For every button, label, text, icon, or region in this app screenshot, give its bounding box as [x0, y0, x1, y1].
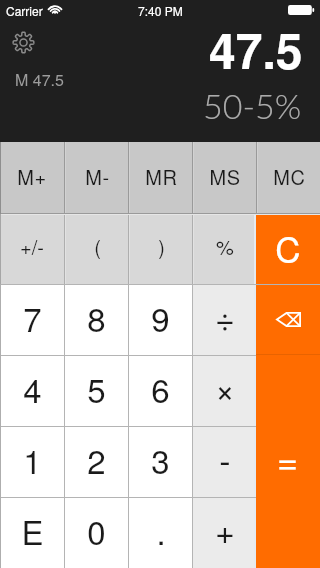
button[interactable]: ÷ — [193, 285, 256, 355]
staticText: % — [216, 232, 234, 261]
button[interactable]: MS — [194, 142, 256, 213]
button[interactable]: 5 — [65, 356, 128, 426]
button[interactable]: 0 — [65, 498, 128, 568]
button[interactable]: Settings — [9, 28, 38, 57]
button[interactable]: % — [194, 215, 256, 284]
staticText: MR — [145, 162, 178, 191]
staticText: . — [156, 507, 166, 554]
staticText: 1 — [23, 436, 42, 483]
staticText: 0 — [87, 507, 106, 554]
staticText: 5 — [87, 365, 106, 412]
button[interactable]: - — [193, 427, 256, 497]
button[interactable]: 3 — [129, 427, 192, 497]
staticText: MS — [209, 162, 241, 191]
staticText: M- — [85, 162, 110, 191]
button[interactable]: +/- — [0, 215, 64, 284]
staticText: ) — [158, 232, 165, 261]
button[interactable]: Backspace — [256, 285, 320, 355]
staticText: 50-5% — [203, 85, 302, 126]
staticText: M+ — [17, 162, 47, 191]
button[interactable]: M- — [66, 142, 128, 213]
button[interactable]: 4 — [0, 356, 64, 426]
button[interactable]: + — [193, 498, 256, 568]
staticText: 7:40 PM — [138, 2, 183, 19]
button[interactable]: × — [193, 356, 256, 426]
staticText: 47.5 — [209, 15, 303, 84]
staticText: 4 — [23, 365, 42, 412]
staticText: 8 — [87, 294, 106, 341]
button[interactable]: 7 — [0, 285, 64, 355]
staticText: 6 — [151, 365, 170, 412]
staticText: C — [275, 223, 301, 273]
button[interactable]: 6 — [129, 356, 192, 426]
staticText: × — [215, 363, 235, 412]
staticText: 2 — [87, 436, 106, 483]
staticText: 7 — [23, 294, 42, 341]
button[interactable]: 2 — [65, 427, 128, 497]
staticText: E — [21, 507, 44, 554]
staticText: MC — [273, 162, 306, 191]
button[interactable]: C — [256, 215, 320, 284]
staticText: + — [215, 505, 235, 554]
staticText: - — [219, 434, 231, 483]
staticText: ( — [94, 232, 101, 261]
button[interactable]: MC — [258, 142, 320, 213]
button[interactable]: 8 — [65, 285, 128, 355]
button[interactable]: MR — [130, 142, 192, 213]
button[interactable]: 9 — [129, 285, 192, 355]
staticText: +/- — [20, 232, 44, 261]
button[interactable]: ( — [66, 215, 128, 284]
staticText: 9 — [151, 294, 170, 341]
button[interactable]: E — [0, 498, 64, 568]
staticText: Carrier — [6, 2, 43, 19]
staticText: M 47.5 — [15, 68, 64, 91]
button[interactable]: . — [129, 498, 192, 568]
button[interactable]: 1 — [0, 427, 64, 497]
button[interactable]: ) — [130, 215, 192, 284]
button[interactable]: M+ — [0, 142, 64, 213]
staticText: ÷ — [215, 292, 235, 341]
button[interactable]: = — [256, 355, 320, 568]
staticText: 3 — [151, 436, 170, 483]
staticText: = — [277, 433, 299, 485]
